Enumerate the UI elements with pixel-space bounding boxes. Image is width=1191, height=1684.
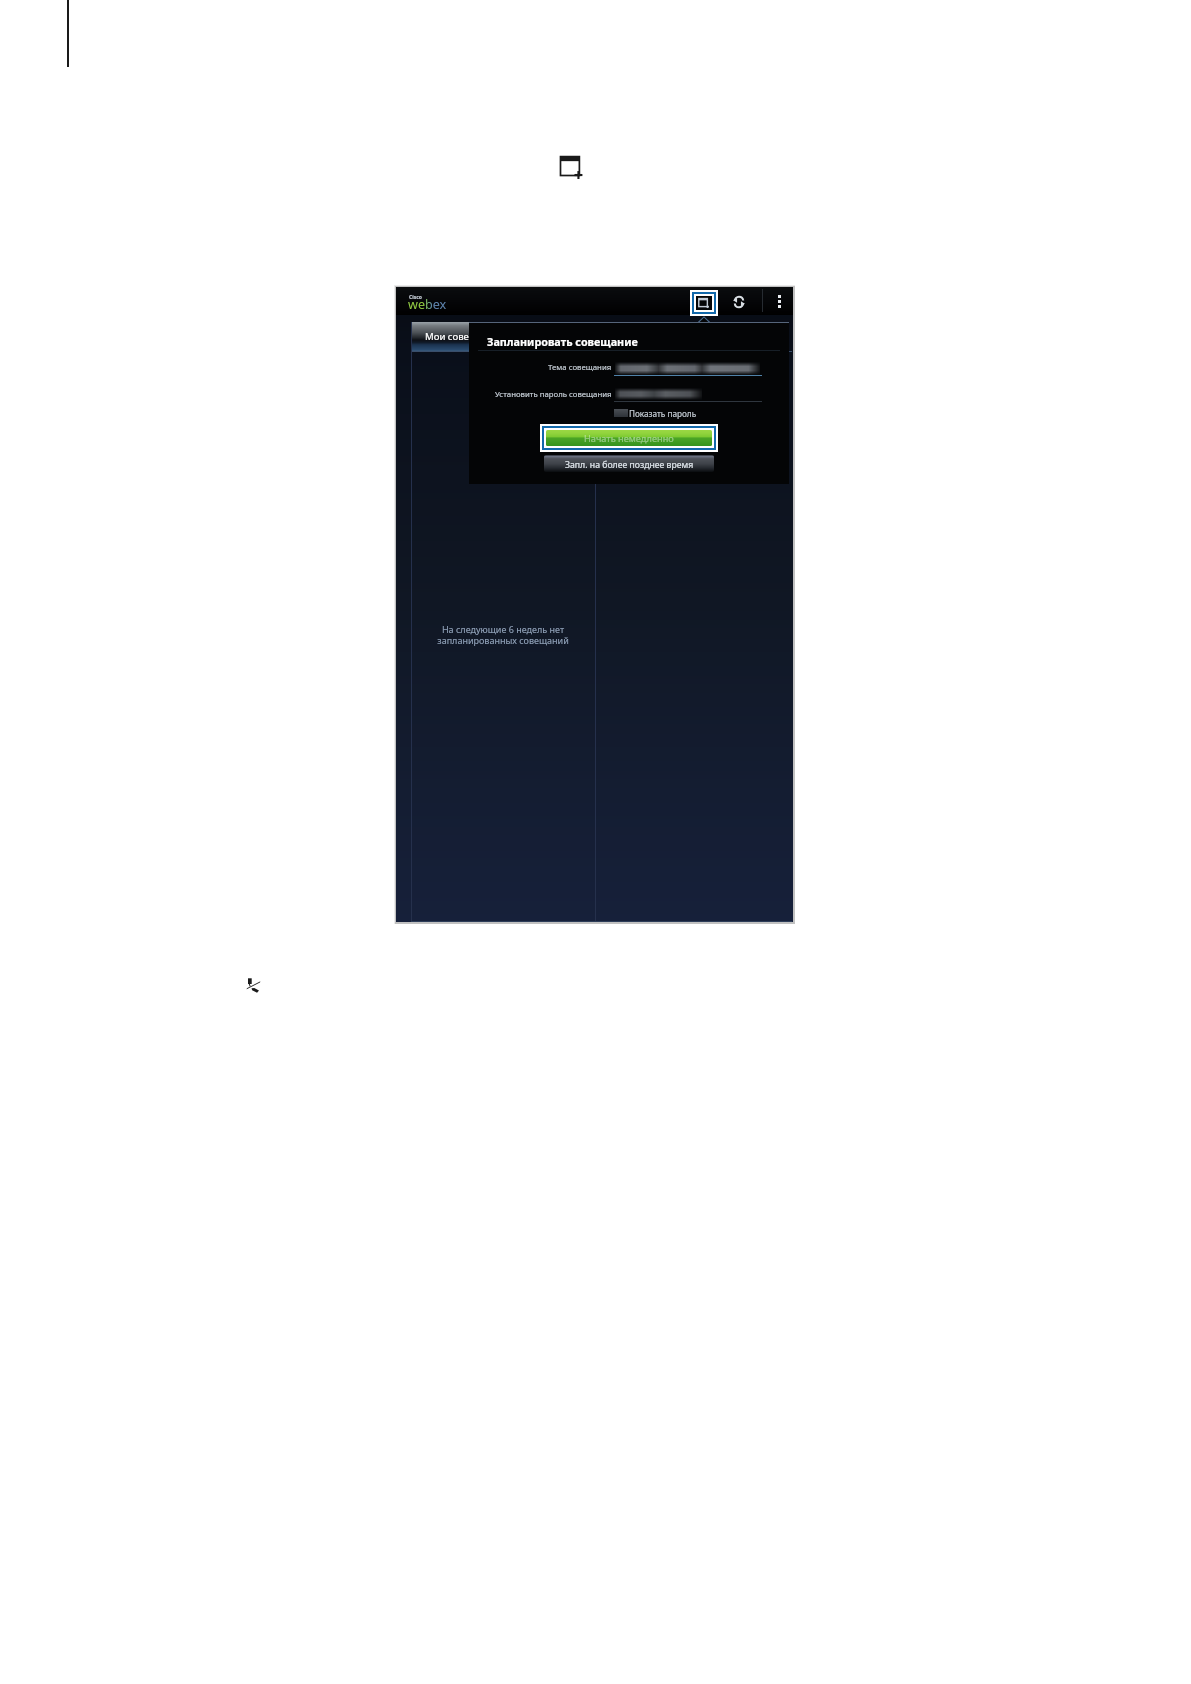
button[interactable]: Refresh xyxy=(730,293,747,310)
staticText: Cisco xyxy=(409,294,422,301)
button[interactable]: Мои совещания xyxy=(411,322,517,352)
staticText: webex xyxy=(408,296,447,313)
button[interactable]: Начать немедленно xyxy=(546,430,712,446)
staticText: Запланировать совещание xyxy=(487,334,638,349)
staticText: Показать пароль xyxy=(629,408,697,419)
button[interactable]: More options xyxy=(771,292,788,310)
button[interactable]: Meeting password field xyxy=(614,386,762,402)
staticText: Установить пароль совещания xyxy=(495,389,612,400)
button[interactable]: Meeting topic field xyxy=(614,360,762,376)
button[interactable]: Показать пароль xyxy=(614,407,697,419)
staticText: Тема совещания xyxy=(548,362,612,373)
staticText: На следующие 6 недель нет запланированны… xyxy=(411,623,595,647)
button[interactable]: Запл. на более позднее время xyxy=(544,455,714,472)
staticText: Начать немедленно xyxy=(584,432,674,445)
staticText: Запл. на более позднее время xyxy=(565,459,694,471)
button[interactable]: New meeting xyxy=(696,296,712,310)
staticText: Мои совещания xyxy=(425,330,501,343)
